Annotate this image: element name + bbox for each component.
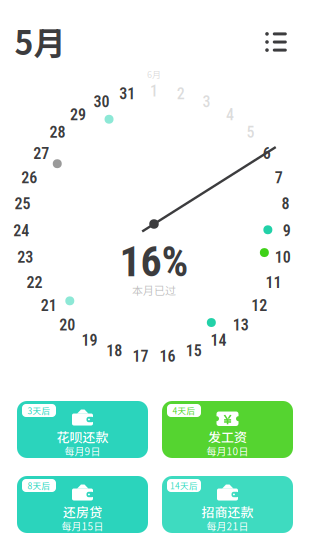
staticText: 还房贷 <box>63 502 102 521</box>
staticText: 31 <box>119 84 135 103</box>
staticText: 14 <box>210 331 226 350</box>
staticText: 6月 <box>147 67 161 80</box>
staticText: 21 <box>41 296 57 315</box>
staticText: 每月10日 <box>206 444 248 458</box>
staticText: 13 <box>233 315 249 334</box>
staticText: 9 <box>283 221 291 240</box>
staticText: 17 <box>132 347 148 366</box>
button[interactable]: 还房贷 <box>17 476 148 533</box>
staticText: 3天后 <box>27 404 50 417</box>
staticText: 5 <box>246 123 254 142</box>
staticText: 6 <box>263 144 271 163</box>
staticText: 花呗还款 <box>56 427 108 446</box>
staticText: 4天后 <box>172 404 195 417</box>
staticText: 16% <box>119 237 188 287</box>
staticText: 18 <box>106 341 122 360</box>
staticText: 4 <box>226 105 234 124</box>
staticText: 7 <box>275 168 283 187</box>
staticText: 招商还款 <box>201 502 253 521</box>
staticText: 1 <box>150 82 158 100</box>
staticText: 20 <box>59 315 75 334</box>
staticText: 27 <box>33 144 49 163</box>
staticText: 14天后 <box>170 479 198 492</box>
staticText: 8 <box>281 194 289 213</box>
staticText: 10 <box>275 248 291 267</box>
staticText: 19 <box>81 331 97 350</box>
button[interactable]: 发工资 <box>162 401 293 458</box>
staticText: 29 <box>70 105 86 124</box>
staticText: 12 <box>251 296 267 315</box>
staticText: 2 <box>177 84 185 103</box>
staticText: 23 <box>17 248 33 267</box>
staticText: 本月已过 <box>132 282 176 298</box>
staticText: 3 <box>202 92 210 111</box>
staticText: 每月21日 <box>206 519 248 533</box>
staticText: 16 <box>159 347 175 366</box>
staticText: 22 <box>27 273 43 292</box>
staticText: 30 <box>94 92 110 111</box>
staticText: 发工资 <box>208 427 247 446</box>
staticText: 15 <box>186 341 202 360</box>
staticText: 每月15日 <box>61 519 103 533</box>
button[interactable]: 花呗还款 <box>17 401 148 458</box>
staticText: 24 <box>13 221 29 240</box>
staticText: 25 <box>14 194 30 213</box>
staticText: 26 <box>21 168 37 187</box>
staticText: 28 <box>50 123 66 142</box>
staticText: 5月 <box>14 18 65 64</box>
staticText: 8天后 <box>27 479 50 492</box>
staticText: 每月9日 <box>64 444 100 458</box>
button[interactable]: List view <box>259 25 293 59</box>
button[interactable]: 招商还款 <box>162 476 293 533</box>
staticText: 11 <box>265 273 281 292</box>
